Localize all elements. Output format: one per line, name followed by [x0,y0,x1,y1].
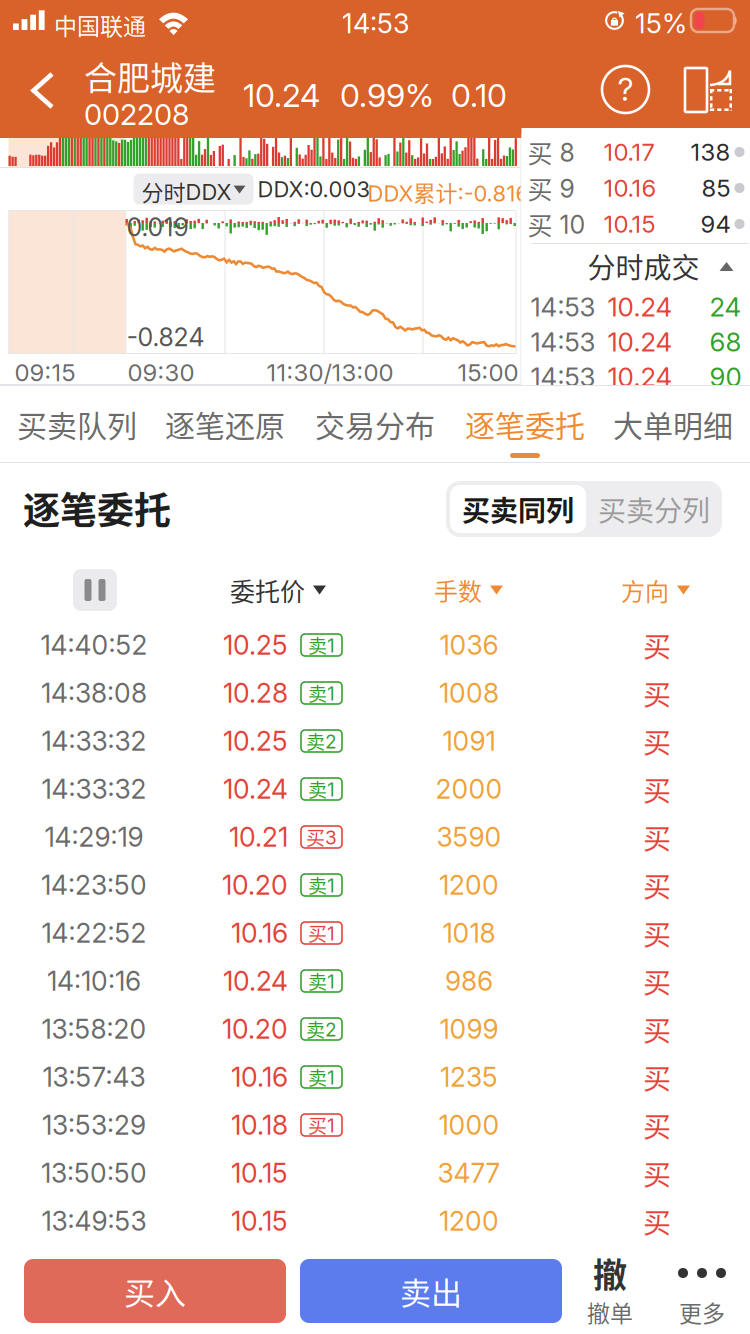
staticText: 10.21 [229,821,288,853]
staticText: 卖1 [308,775,335,803]
staticText: 14:38:08 [41,677,147,709]
button[interactable]: 帮助 [589,56,661,138]
staticText: 0.019 [126,212,188,242]
staticText: -0.824 [126,322,204,352]
staticText: 撤单 [587,1295,633,1329]
staticText: 买 [643,1153,671,1193]
staticText: 买 [643,769,671,809]
button[interactable]: 分屏 [681,56,747,138]
staticText: 002208 [84,97,189,132]
button[interactable]: 分时DDX [133,174,253,205]
staticText: 买入 [124,1269,186,1313]
staticText: 0.99% [340,76,434,115]
button[interactable]: 买入 [24,1259,286,1323]
staticText: 买 8 [527,134,574,170]
staticText: 85 [701,173,730,202]
staticText: 大单明细 [613,402,733,446]
staticText: 13:50:50 [41,1157,147,1189]
staticText: 15:00 [457,358,518,387]
staticText: 138 [690,137,730,166]
staticText: 卖1 [308,1063,335,1091]
staticText: 撤 [593,1248,627,1298]
staticText: 10.25 [223,629,288,661]
button[interactable]: 返回 [0,56,72,138]
staticText: 1200 [439,869,499,901]
staticText: 10.24 [223,965,288,997]
staticText: DDX:0.003 [257,176,370,203]
staticText: 买1 [308,1111,335,1139]
staticText: 10.24 [607,361,672,393]
button[interactable]: 方向 [621,559,711,621]
staticText: 14:10:16 [47,965,141,997]
button[interactable]: 手数 [434,559,524,621]
staticText: 10.28 [223,677,288,709]
staticText: 11:30/13:00 [266,358,393,387]
staticText: 买卖队列 [17,402,137,446]
button[interactable]: 委托价 [230,559,340,621]
staticText: 24 [709,291,741,323]
staticText: 10.15 [231,1157,288,1189]
staticText: 手数 [434,573,482,607]
staticText: 1000 [438,1109,499,1141]
staticText: 买 [643,721,671,761]
button[interactable]: 买卖分列 [586,485,722,533]
staticText: 14:53 [342,7,409,40]
staticText: 买 [643,865,671,905]
staticText: 2000 [435,773,502,805]
staticText: 1200 [439,1205,499,1237]
staticText: 68 [709,326,741,358]
staticText: 986 [445,965,493,997]
staticText: 买 [643,1201,671,1241]
staticText: 合肥城建 [84,52,216,100]
staticText: 中国联通 [54,8,146,41]
staticText: 卖2 [306,727,337,755]
staticText: 交易分布 [315,402,435,446]
staticText: 更多 [679,1295,725,1329]
staticText: 买 [643,817,671,857]
button[interactable]: 逐笔委托 [450,386,600,463]
staticText: 13:58:20 [41,1013,146,1045]
staticText: 10.15 [231,1205,288,1237]
staticText: 买 [643,961,671,1001]
staticText: 14:23:50 [41,869,147,901]
staticText: 94 [700,209,730,238]
staticText: 逐笔委托 [465,402,585,446]
button[interactable]: 暂停 [63,559,127,621]
staticText: 买 [643,1105,671,1145]
staticText: 1099 [439,1013,498,1045]
button[interactable]: 分时成交 [521,244,750,288]
button[interactable]: 交易分布 [300,386,450,463]
staticText: 10.16 [231,1061,288,1093]
staticText: 14:53 [530,291,595,323]
staticText: 买 [643,1057,671,1097]
staticText: 逐笔还原 [165,402,285,446]
staticText: 买 [643,1009,671,1049]
staticText: 卖1 [308,631,335,659]
staticText: 0.10 [451,76,507,115]
button[interactable]: 撤 [562,1245,658,1333]
staticText: 买1 [308,919,335,947]
button[interactable]: 买卖同列 [450,485,586,533]
button[interactable]: 卖出 [300,1259,562,1323]
staticText: 10.20 [222,1013,288,1045]
staticText: 15% [635,7,687,40]
staticText: 买卖分列 [598,489,710,529]
button[interactable]: 大单明细 [598,386,748,463]
staticText: 买 [643,625,671,665]
staticText: 委托价 [230,572,305,608]
staticText: 10.18 [231,1109,288,1141]
staticText: 买 [643,913,671,953]
staticText: 方向 [621,573,669,607]
button[interactable]: 买卖队列 [2,386,152,463]
staticText: 10.24 [223,773,288,805]
button[interactable]: 更多 [654,1245,750,1333]
staticText: 09:15 [14,358,75,387]
staticText: 10.24 [243,76,320,115]
staticText: 13:49:53 [41,1205,146,1237]
button[interactable]: 逐笔还原 [150,386,300,463]
staticText: 14:40:52 [40,629,147,661]
staticText: 买 9 [527,170,574,206]
staticText: 卖1 [308,871,335,899]
staticText: 1008 [439,677,499,709]
staticText: 分时成交 [587,246,699,286]
